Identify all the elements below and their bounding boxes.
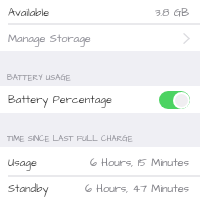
button[interactable]: Standby — [0, 177, 200, 200]
staticText: Usage — [8, 155, 37, 170]
staticText: Manage Storage — [8, 31, 91, 46]
staticText: TIME SINCE LAST FULL CHARGE — [7, 133, 133, 144]
button[interactable]: Manage Storage — [0, 25, 200, 51]
staticText: Available — [8, 5, 50, 20]
staticText: 3.8 GB — [155, 5, 190, 20]
staticText: 6 Hours, 15 Minutes — [90, 155, 190, 170]
button[interactable]: Available — [0, 0, 200, 25]
staticText: Battery Percentage — [8, 92, 112, 107]
other: Open Manage Storage — [183, 33, 190, 44]
staticText: Standby — [8, 181, 49, 196]
button[interactable]: Battery Percentage toggle — [159, 91, 190, 109]
staticText: BATTERY USAGE — [7, 72, 71, 83]
staticText: 6 Hours, 47 Minutes — [85, 181, 190, 196]
button[interactable]: Battery Percentage — [0, 86, 200, 113]
button[interactable]: Usage — [0, 147, 200, 177]
